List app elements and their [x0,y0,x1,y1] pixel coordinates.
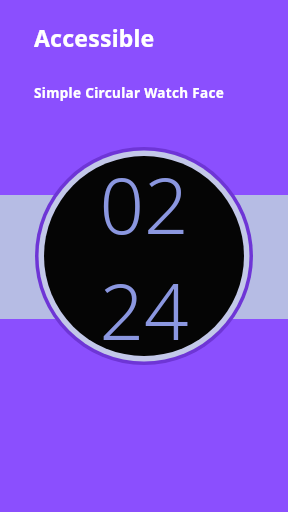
button[interactable]: Circular watch face showing 02 24 [35,147,253,365]
staticText: 24 [99,257,189,363]
staticText: Accessible [34,22,155,53]
staticText: Simple Circular Watch Face [34,84,225,102]
staticText: 02 [99,151,189,257]
